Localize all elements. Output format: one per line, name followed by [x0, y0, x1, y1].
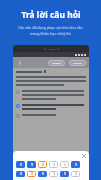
staticText: trong khóa học và kỳ thi: [30, 31, 71, 36]
button[interactable]: 1: [38, 171, 47, 177]
staticText: 2: [31, 172, 33, 176]
staticText: Các câu đã dạng phục sự như nhu cầu: [18, 25, 83, 30]
staticText: 1: [64, 172, 66, 176]
staticText: 1: [20, 163, 22, 167]
button[interactable]: 3: [49, 171, 58, 177]
button[interactable]: 1: [27, 161, 36, 168]
staticText: 1: [75, 163, 77, 167]
button[interactable]: Back: [16, 59, 24, 67]
staticText: 1: [20, 172, 22, 176]
staticText: Trả lời câu hỏi: [21, 9, 81, 21]
button[interactable]: [69, 60, 86, 66]
staticText: 1: [31, 163, 33, 167]
button[interactable]: 1: [60, 171, 69, 177]
button[interactable]: 2: [27, 171, 36, 177]
button[interactable]: 3: [60, 161, 69, 168]
button[interactable]: 1: [71, 161, 80, 168]
button[interactable]: 1: [16, 171, 25, 177]
staticText: 2: [42, 163, 44, 167]
button[interactable]: Close: [82, 154, 86, 158]
button[interactable]: [48, 60, 65, 66]
button[interactable]: 1: [16, 161, 25, 168]
button[interactable]: 3: [71, 171, 80, 177]
button[interactable]: 2: [38, 161, 47, 168]
staticText: 3: [75, 172, 77, 176]
button[interactable]: 3: [49, 161, 58, 168]
staticText: 3: [53, 172, 55, 176]
staticText: 3: [64, 163, 66, 167]
staticText: 1: [42, 172, 44, 176]
button[interactable]: [16, 104, 86, 110]
button[interactable]: [16, 114, 86, 118]
staticText: 3: [53, 163, 55, 167]
button[interactable]: [16, 90, 86, 100]
